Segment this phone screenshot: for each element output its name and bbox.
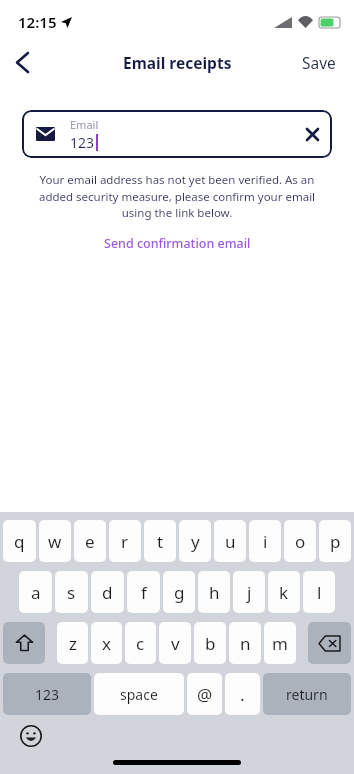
button[interactable]: f — [127, 571, 160, 613]
staticText: Save — [302, 52, 336, 73]
staticText: s — [67, 581, 76, 604]
staticText: return — [286, 685, 328, 704]
staticText: o — [295, 530, 306, 553]
staticText: Email — [70, 117, 99, 132]
staticText: e — [85, 530, 95, 553]
button[interactable]: return — [263, 673, 351, 715]
button[interactable]: 123 — [3, 673, 91, 715]
button[interactable]: o — [284, 520, 316, 562]
staticText: r — [121, 530, 129, 553]
button[interactable]: i — [249, 520, 281, 562]
staticText: f — [141, 581, 147, 604]
staticText: @ — [197, 683, 213, 706]
staticText: n — [240, 632, 251, 655]
staticText: . — [240, 683, 245, 706]
button[interactable]: . — [225, 673, 260, 715]
button[interactable]: Backspace — [308, 622, 351, 664]
staticText: k — [279, 581, 289, 604]
staticText: v — [171, 632, 180, 655]
staticText: b — [205, 632, 216, 655]
staticText: w — [48, 530, 62, 553]
button[interactable]: a — [19, 571, 52, 613]
button[interactable]: q — [3, 520, 36, 562]
button[interactable]: u — [214, 520, 246, 562]
button[interactable]: r — [109, 520, 141, 562]
button[interactable]: y — [179, 520, 211, 562]
staticText: c — [136, 632, 145, 655]
button[interactable]: s — [55, 571, 88, 613]
button[interactable]: m — [264, 622, 296, 664]
staticText: 123 — [70, 133, 95, 152]
button[interactable]: Send confirmation email — [96, 232, 259, 255]
button[interactable]: e — [74, 520, 106, 562]
button[interactable]: n — [229, 622, 261, 664]
staticText: m — [272, 632, 288, 655]
button[interactable]: Back — [0, 44, 44, 80]
staticText: a — [31, 581, 41, 604]
button[interactable]: Clear text — [292, 114, 332, 154]
button[interactable]: @ — [187, 673, 222, 715]
button[interactable]: w — [39, 520, 71, 562]
button[interactable]: Email — [22, 110, 332, 158]
staticText: h — [209, 581, 220, 604]
staticText: p — [330, 530, 341, 553]
button[interactable]: l — [303, 571, 335, 613]
staticText: g — [174, 581, 185, 604]
staticText: Email receipts — [123, 52, 232, 73]
button[interactable]: x — [91, 622, 122, 664]
staticText: d — [102, 581, 113, 604]
staticText: u — [225, 530, 236, 553]
button[interactable]: Emoji — [16, 721, 46, 751]
button[interactable]: k — [268, 571, 300, 613]
button[interactable]: b — [194, 622, 226, 664]
button[interactable]: g — [163, 571, 195, 613]
staticText: q — [14, 530, 25, 553]
button[interactable]: Save — [284, 46, 354, 79]
staticText: Your email address has not yet been veri… — [34, 172, 320, 220]
button[interactable]: p — [319, 520, 351, 562]
staticText: Send confirmation email — [104, 235, 251, 252]
staticText: x — [102, 632, 111, 655]
button[interactable]: c — [125, 622, 156, 664]
button[interactable]: j — [233, 571, 265, 613]
staticText: j — [247, 581, 252, 604]
staticText: y — [191, 530, 200, 553]
button[interactable]: t — [144, 520, 176, 562]
button[interactable]: h — [198, 571, 230, 613]
staticText: t — [157, 530, 164, 553]
staticText: space — [120, 685, 158, 704]
button[interactable]: space — [94, 673, 184, 715]
button[interactable]: Shift — [3, 622, 45, 664]
button[interactable]: v — [159, 622, 191, 664]
staticText: 12:15 — [18, 12, 57, 32]
button[interactable]: z — [57, 622, 88, 664]
button[interactable]: d — [91, 571, 124, 613]
staticText: z — [69, 632, 77, 655]
staticText: 123 — [35, 685, 60, 704]
staticText: i — [263, 530, 268, 553]
staticText: l — [317, 581, 322, 604]
